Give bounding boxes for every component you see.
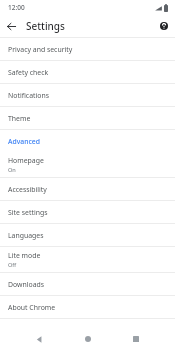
staticText: Safety check bbox=[8, 68, 49, 77]
staticText: Settings bbox=[26, 19, 65, 33]
staticText: Downloads bbox=[8, 280, 45, 289]
button[interactable]: Downloads bbox=[0, 273, 175, 295]
button[interactable]: Home bbox=[78, 329, 98, 349]
button[interactable]: Lite mode bbox=[0, 247, 175, 272]
staticText: Notifications bbox=[8, 91, 49, 100]
button[interactable]: Theme bbox=[0, 107, 175, 129]
staticText: Privacy and security bbox=[8, 45, 73, 54]
staticText: Off bbox=[8, 261, 17, 269]
button[interactable]: Site settings bbox=[0, 201, 175, 223]
staticText: On bbox=[8, 166, 16, 174]
staticText: Homepage bbox=[8, 156, 44, 165]
staticText: 12:00 bbox=[8, 3, 25, 12]
button[interactable]: Back bbox=[29, 329, 49, 349]
button[interactable]: About Chrome bbox=[0, 296, 175, 318]
staticText: Languages bbox=[8, 231, 44, 240]
staticText: Site settings bbox=[8, 208, 48, 217]
button[interactable]: Notifications bbox=[0, 84, 175, 106]
button[interactable]: Homepage bbox=[0, 152, 175, 177]
staticText: Theme bbox=[8, 114, 31, 123]
staticText: Advanced bbox=[8, 137, 40, 146]
button[interactable]: Accessibility bbox=[0, 178, 175, 200]
button[interactable]: Languages bbox=[0, 224, 175, 246]
staticText: Lite mode bbox=[8, 251, 41, 260]
button[interactable]: Safety check bbox=[0, 61, 175, 83]
staticText: Accessibility bbox=[8, 185, 47, 194]
button[interactable]: Back bbox=[2, 17, 20, 35]
button[interactable]: Privacy and security bbox=[0, 38, 175, 60]
staticText: About Chrome bbox=[8, 303, 56, 312]
button[interactable]: Recent apps bbox=[126, 329, 146, 349]
button[interactable]: Help and feedback bbox=[156, 18, 172, 34]
